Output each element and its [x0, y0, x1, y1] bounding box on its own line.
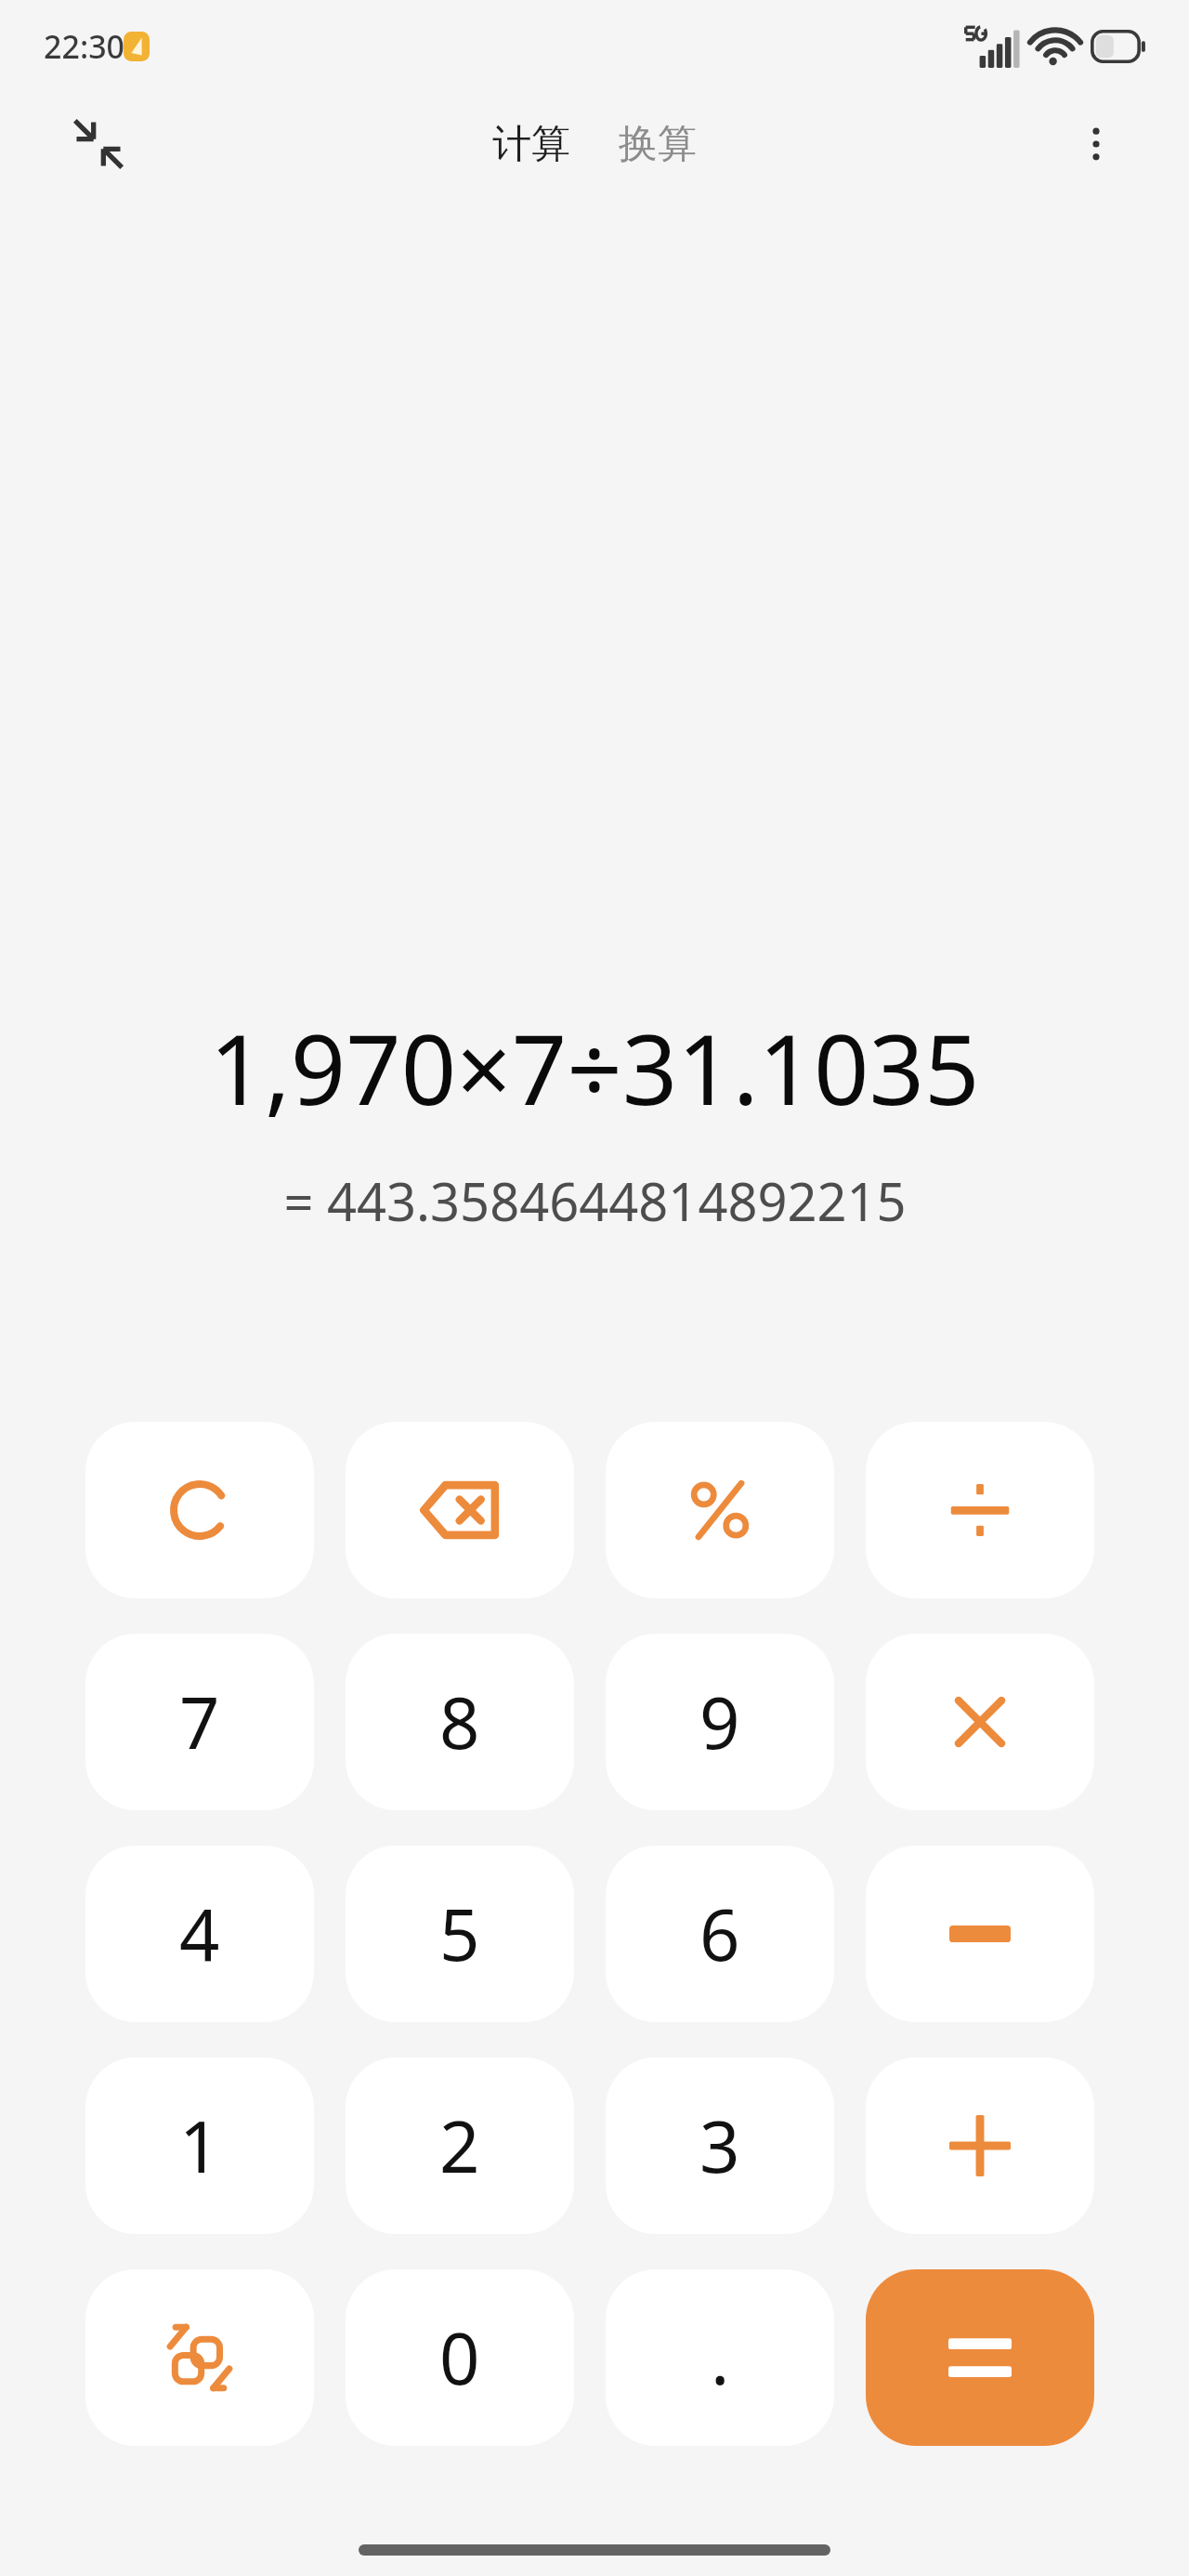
staticText: 9	[699, 1674, 740, 1770]
staticText: 计算	[492, 120, 570, 169]
staticText: 6	[699, 1886, 740, 1982]
staticText: 8	[439, 1674, 480, 1770]
staticText: .	[711, 2309, 730, 2406]
button[interactable]: Plus	[866, 2057, 1094, 2234]
staticText: 4	[179, 1886, 220, 1982]
staticText: 1,970×7÷31.1035	[209, 1002, 980, 1134]
button[interactable]: 1	[85, 2057, 314, 2234]
button[interactable]: Collapse	[54, 99, 143, 189]
staticText: 2	[439, 2097, 480, 2194]
button[interactable]: 3	[606, 2057, 834, 2234]
staticText: 0	[439, 2309, 480, 2406]
button[interactable]: 4	[85, 1846, 314, 2022]
button[interactable]: Minus	[866, 1846, 1094, 2022]
button[interactable]: 2	[346, 2057, 574, 2234]
button[interactable]: Scientific functions	[85, 2269, 314, 2446]
button[interactable]: Backspace	[346, 1422, 574, 1598]
staticText: = 443.3584644814892215	[283, 1165, 907, 1236]
staticText: 22:30	[44, 25, 125, 68]
staticText: 3	[699, 2097, 740, 2194]
button[interactable]: .	[606, 2269, 834, 2446]
button[interactable]: Equals	[866, 2269, 1094, 2446]
button[interactable]: 0	[346, 2269, 574, 2446]
button[interactable]: 7	[85, 1634, 314, 1810]
staticText: 7	[179, 1674, 220, 1770]
button[interactable]: Percent	[606, 1422, 834, 1598]
button[interactable]: 计算	[485, 112, 578, 177]
staticText: 换算	[619, 120, 697, 169]
button[interactable]: Divide	[866, 1422, 1094, 1598]
staticText: 1	[179, 2097, 220, 2194]
button[interactable]: Clear	[85, 1422, 314, 1598]
staticText: 5	[439, 1886, 480, 1982]
button[interactable]: 8	[346, 1634, 574, 1810]
button[interactable]: Multiply	[866, 1634, 1094, 1810]
button[interactable]: 6	[606, 1846, 834, 2022]
button[interactable]: More options	[1055, 103, 1137, 185]
button[interactable]: 9	[606, 1634, 834, 1810]
button[interactable]: 5	[346, 1846, 574, 2022]
button[interactable]: 换算	[611, 112, 704, 177]
